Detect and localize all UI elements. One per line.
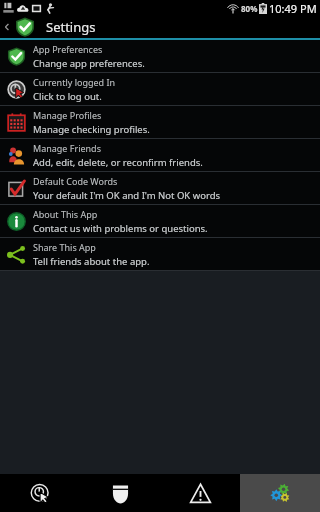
staticText: App Preferences xyxy=(33,43,103,55)
button[interactable]: Manage Friends xyxy=(0,139,320,171)
staticText: 10:49 PM xyxy=(269,1,317,16)
staticText: Contact us with problems or questions. xyxy=(33,222,208,235)
button[interactable]: Status xyxy=(80,474,160,512)
staticText: Manage checking profiles. xyxy=(33,123,150,136)
button[interactable]: Alerts xyxy=(160,474,240,512)
button[interactable]: Settings xyxy=(240,474,320,512)
staticText: Click to log out. xyxy=(33,90,102,103)
button[interactable]: Currently logged In xyxy=(0,73,320,105)
staticText: Tell friends about the app. xyxy=(33,255,150,268)
button[interactable]: Default Code Words xyxy=(0,172,320,204)
staticText: Add, edit, delete, or reconfirm friends. xyxy=(33,156,203,169)
staticText: About This App xyxy=(33,208,98,220)
button[interactable]: Share This App xyxy=(0,238,320,270)
staticText: Share This App xyxy=(33,241,96,253)
button[interactable]: Back xyxy=(0,16,14,38)
staticText: Manage Profiles xyxy=(33,109,102,121)
staticText: Settings xyxy=(46,18,96,36)
button[interactable]: Manage Profiles xyxy=(0,106,320,138)
staticText: Your default I'm OK and I'm Not OK words xyxy=(33,189,221,202)
button[interactable]: About This App xyxy=(0,205,320,237)
button[interactable]: App Preferences xyxy=(0,40,320,72)
button[interactable]: Check In xyxy=(0,474,80,512)
staticText: Currently logged In xyxy=(33,76,116,88)
staticText: Change app preferences. xyxy=(33,57,145,70)
staticText: Manage Friends xyxy=(33,142,101,154)
staticText: 80% xyxy=(241,3,258,14)
staticText: Default Code Words xyxy=(33,175,118,187)
